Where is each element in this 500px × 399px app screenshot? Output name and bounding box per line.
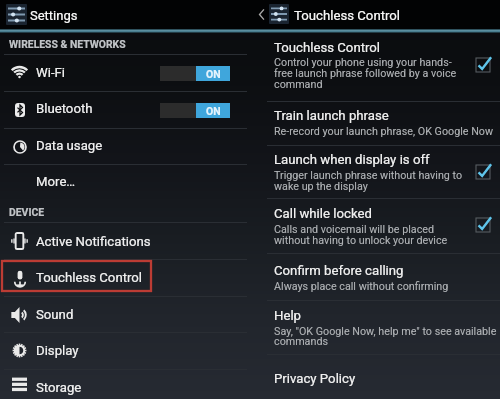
staticText: wake up the display: [274, 180, 368, 193]
button[interactable]: Call while locked: [250, 199, 500, 253]
button[interactable]: ON: [160, 66, 230, 81]
staticText: Always place call without confirming: [274, 280, 449, 293]
staticText: Data usage: [36, 138, 103, 153]
staticText: command: [274, 78, 323, 91]
button[interactable]: Checkbox: [476, 218, 490, 232]
staticText: Control your phone using your hands-: [274, 56, 452, 69]
staticText: Calls and voicemail will be placed: [274, 223, 435, 236]
other: Navigate up: [258, 7, 265, 22]
button[interactable]: Checkbox: [476, 58, 490, 72]
staticText: Call while locked: [274, 206, 372, 221]
button[interactable]: Wi-Fi: [0, 54, 250, 91]
other: Checkbox: [476, 165, 490, 179]
other: Checkbox: [476, 218, 490, 232]
button[interactable]: Touchless Control: [0, 259, 250, 296]
button[interactable]: Storage: [0, 369, 250, 399]
staticText: Launch when display is off: [274, 152, 430, 167]
staticText: Privacy Policy: [274, 371, 356, 386]
button[interactable]: Active Notifications: [0, 222, 250, 259]
button[interactable]: Privacy Policy: [250, 355, 500, 399]
button[interactable]: Sound: [0, 296, 250, 333]
button[interactable]: ON: [160, 103, 230, 118]
staticText: WIRELESS & NETWORKS: [9, 38, 126, 50]
other: Checkbox: [476, 58, 490, 72]
button[interactable]: Settings: [0, 0, 120, 30]
button[interactable]: Train launch phrase: [250, 102, 500, 145]
staticText: Touchless Control: [274, 40, 381, 55]
staticText: commands: [274, 335, 329, 348]
staticText: Settings: [30, 8, 78, 23]
staticText: Active Notifications: [36, 234, 151, 249]
staticText: Storage: [36, 380, 82, 395]
button[interactable]: Launch when display is off: [250, 146, 500, 198]
button[interactable]: Help: [250, 301, 500, 354]
button[interactable]: Confirm before calling: [250, 254, 500, 300]
staticText: ON: [206, 105, 221, 117]
staticText: Trigger launch phrase without having to: [274, 169, 463, 182]
staticText: free launch phrase followed by a voice: [274, 67, 457, 80]
staticText: Touchless Control: [36, 270, 143, 285]
button[interactable]: Data usage: [0, 128, 250, 165]
staticText: Confirm before calling: [274, 263, 404, 278]
staticText: Sound: [36, 307, 74, 322]
staticText: Re-record your launch phrase, OK Google …: [274, 125, 494, 138]
button[interactable]: More…: [0, 164, 250, 201]
staticText: Train launch phrase: [274, 108, 389, 123]
staticText: Say, "OK Google Now, help me" to see ava…: [274, 325, 497, 338]
staticText: Bluetooth: [36, 101, 93, 116]
button[interactable]: Bluetooth: [0, 91, 250, 128]
button[interactable]: Navigate up: [256, 0, 406, 30]
staticText: ON: [206, 68, 221, 80]
button[interactable]: Touchless Control: [250, 33, 500, 101]
staticText: More…: [36, 174, 76, 189]
staticText: Touchless Control: [294, 8, 401, 23]
button[interactable]: Display: [0, 332, 250, 369]
staticText: DEVICE: [9, 206, 45, 218]
button[interactable]: Checkbox: [476, 165, 490, 179]
staticText: Wi-Fi: [36, 65, 66, 80]
staticText: without having to unlock your device: [274, 234, 448, 247]
staticText: Help: [274, 308, 302, 323]
staticText: Display: [36, 343, 79, 358]
